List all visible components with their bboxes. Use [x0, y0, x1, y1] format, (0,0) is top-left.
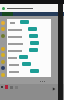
button[interactable]: App [1, 60, 5, 64]
button[interactable] [7, 69, 51, 75]
button[interactable]: App [1, 66, 5, 70]
button[interactable] [7, 41, 51, 47]
button[interactable]: App [1, 73, 5, 77]
button[interactable]: App [1, 34, 5, 38]
button[interactable] [29, 34, 38, 38]
button[interactable]: Play [52, 87, 56, 91]
button[interactable]: App [1, 47, 5, 51]
button[interactable]: App [1, 53, 5, 57]
button[interactable] [7, 48, 51, 54]
button[interactable] [7, 55, 51, 61]
button[interactable] [7, 27, 51, 33]
button[interactable] [22, 62, 31, 66]
button[interactable] [28, 27, 37, 31]
button[interactable] [7, 62, 51, 68]
button[interactable]: App [1, 21, 5, 25]
button[interactable] [30, 41, 39, 45]
button[interactable] [19, 55, 28, 59]
button[interactable] [20, 20, 29, 24]
button[interactable]: App [1, 27, 5, 31]
button[interactable] [7, 20, 51, 26]
button[interactable] [29, 48, 38, 52]
button[interactable] [30, 69, 39, 73]
button[interactable] [7, 34, 51, 40]
